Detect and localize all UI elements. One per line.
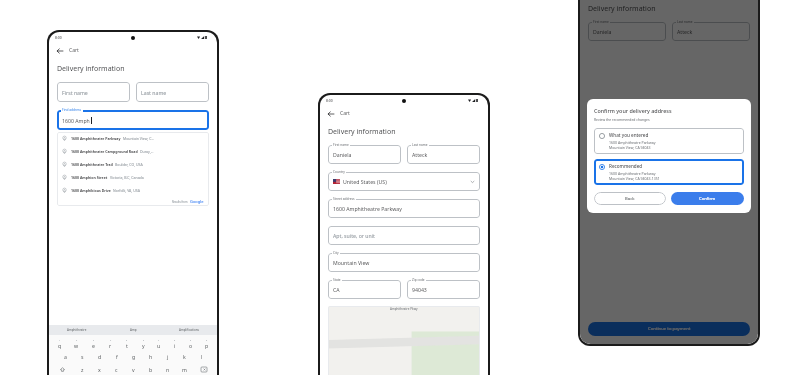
button[interactable]: Back xyxy=(326,109,335,118)
staticText: Recommended xyxy=(609,163,643,169)
button[interactable]: Amphitheatre xyxy=(49,325,105,335)
staticText: r xyxy=(109,342,112,349)
button[interactable]: g xyxy=(125,350,142,363)
button[interactable]: Atteck xyxy=(672,22,750,41)
button[interactable]: 1600 Amphitheatre Trail xyxy=(57,158,209,171)
button[interactable]: f xyxy=(108,350,125,363)
button[interactable]: Amp xyxy=(105,325,161,335)
button[interactable]: Backspace xyxy=(193,363,215,375)
button[interactable]: k xyxy=(176,350,193,363)
staticText: Atteck xyxy=(412,151,428,158)
button[interactable]: 1600 Amphitheatre Parkway xyxy=(57,132,209,145)
button[interactable]: s xyxy=(74,350,91,363)
staticText: 1600 Amphitheatre Parkway xyxy=(71,136,121,141)
button[interactable]: j xyxy=(159,350,176,363)
button[interactable]: 8 xyxy=(167,337,183,350)
button[interactable]: z xyxy=(74,363,91,375)
button[interactable]: b xyxy=(142,363,159,375)
button[interactable]: Amplifications xyxy=(161,325,217,335)
button[interactable]: Back xyxy=(55,46,64,55)
staticText: 1600 Amphitheatre Trail xyxy=(71,162,113,167)
staticText: b xyxy=(149,366,153,373)
staticText: Delivery information xyxy=(57,64,125,74)
button[interactable]: 1 xyxy=(51,337,68,350)
staticText: City xyxy=(333,251,339,255)
button[interactable]: n xyxy=(159,363,176,375)
staticText: a xyxy=(64,353,67,360)
button[interactable]: 4 xyxy=(102,337,119,350)
button[interactable]: Confirm xyxy=(671,192,744,205)
staticText: Delivery information xyxy=(328,127,396,137)
staticText: Confirm xyxy=(699,196,716,202)
staticText: 4 xyxy=(110,339,112,342)
staticText: 8:00 xyxy=(326,98,333,103)
button[interactable]: What you entered xyxy=(594,128,744,154)
button[interactable]: 3 xyxy=(85,337,102,350)
staticText: Mountain View, CA 94043 xyxy=(609,145,651,150)
button[interactable]: Back xyxy=(594,192,666,205)
button[interactable]: x xyxy=(91,363,108,375)
staticText: Mountain View xyxy=(333,259,370,266)
button[interactable]: 1600 Amphion Street xyxy=(57,171,209,184)
button[interactable]: c xyxy=(108,363,125,375)
button[interactable]: a xyxy=(56,350,74,363)
staticText: e xyxy=(92,342,95,349)
button[interactable]: Shift xyxy=(51,363,74,375)
staticText: Norfolk, VA, USA xyxy=(113,188,140,193)
staticText: State xyxy=(333,278,341,282)
staticText: Delivery information xyxy=(588,4,656,14)
staticText: Victoria, B.C, Canada xyxy=(110,175,144,180)
staticText: First name xyxy=(62,89,88,96)
button[interactable]: 9 xyxy=(183,337,199,350)
button[interactable]: 5 xyxy=(119,337,135,350)
button[interactable]: 94043 xyxy=(407,280,480,299)
button[interactable]: 1600 Amphitheatre Campground Road xyxy=(57,145,209,158)
staticText: v xyxy=(132,366,135,373)
button[interactable]: United States (US) xyxy=(328,172,480,191)
staticText: Last name xyxy=(141,89,167,96)
button[interactable]: d xyxy=(91,350,108,363)
button[interactable]: 2 xyxy=(68,337,85,350)
staticText: h xyxy=(149,353,153,360)
button[interactable]: Mountain View xyxy=(328,253,480,272)
staticText: u xyxy=(157,342,161,349)
staticText: Amplifications xyxy=(179,328,200,332)
button[interactable]: 6 xyxy=(135,337,151,350)
staticText: k xyxy=(183,353,186,360)
staticText: 1600 Amphitheatre Parkway xyxy=(609,140,656,145)
button[interactable]: Continue to payment xyxy=(588,322,750,336)
button[interactable]: Last name xyxy=(136,82,209,102)
staticText: Amphitheatre Pkwy xyxy=(390,307,418,311)
button[interactable]: Apt, suite, or unit xyxy=(328,226,480,245)
staticText: t xyxy=(126,342,128,349)
staticText: Back xyxy=(625,196,635,202)
staticText: y xyxy=(142,342,145,349)
staticText: Results from xyxy=(172,200,188,204)
button[interactable]: Daniela xyxy=(328,145,401,164)
button[interactable]: Atteck xyxy=(407,145,480,164)
button[interactable]: 1600 Amph xyxy=(57,110,209,130)
staticText: Continue to payment xyxy=(648,326,691,332)
staticText: n xyxy=(166,366,170,373)
button[interactable]: 0 xyxy=(199,337,215,350)
button[interactable]: Daniela xyxy=(588,22,666,41)
staticText: f xyxy=(116,353,118,360)
staticText: c xyxy=(115,366,118,373)
staticText: x xyxy=(98,366,101,373)
button[interactable]: Map preview xyxy=(328,306,480,375)
button[interactable]: m xyxy=(176,363,193,375)
staticText: Apt, suite, or unit xyxy=(333,232,375,239)
button[interactable]: v xyxy=(125,363,142,375)
button[interactable]: 1600 Amphitheatre Parkway xyxy=(328,199,480,218)
button[interactable]: l xyxy=(193,350,210,363)
staticText: Last name xyxy=(412,143,428,147)
button[interactable]: CA xyxy=(328,280,401,299)
staticText: d xyxy=(98,353,102,360)
button[interactable]: First name xyxy=(57,82,130,102)
staticText: Boulder, CO, USA xyxy=(115,162,143,167)
staticText: Mountain View, C... xyxy=(123,136,155,141)
button[interactable]: 7 xyxy=(151,337,167,350)
button[interactable]: h xyxy=(142,350,159,363)
button[interactable]: Recommended xyxy=(594,159,744,185)
button[interactable]: 1600 Amphibious Drive xyxy=(57,184,209,197)
